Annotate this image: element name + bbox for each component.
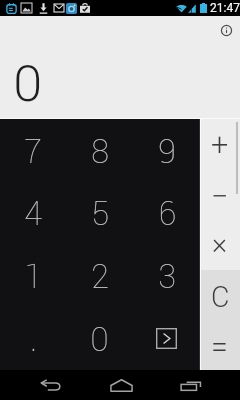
button[interactable]: 1 [0, 244, 66, 307]
staticText: C [211, 277, 230, 319]
staticText: 4 [24, 191, 42, 238]
staticText: 0 [90, 317, 109, 364]
staticText: 0 [13, 48, 43, 121]
staticText: 5 [91, 191, 109, 238]
button[interactable]: + [200, 119, 240, 170]
staticText: − [211, 176, 229, 220]
staticText: × [212, 226, 228, 268]
button[interactable]: 4 [0, 181, 66, 244]
staticText: + [211, 124, 229, 168]
button[interactable]: 7 [0, 119, 66, 181]
button[interactable]: × [200, 220, 240, 270]
button[interactable]: Advanced panel [133, 307, 200, 370]
button[interactable]: Menu [216, 20, 237, 41]
staticText: 8 [91, 129, 109, 176]
button[interactable]: Recents [170, 370, 212, 400]
staticText: 7 [24, 129, 42, 176]
button[interactable]: = [200, 320, 240, 370]
button[interactable]: 9 [133, 119, 200, 181]
staticText: 6 [158, 191, 176, 238]
button[interactable]: − [200, 170, 240, 220]
staticText: 1 [24, 254, 42, 301]
staticText: 3 [158, 254, 176, 301]
button[interactable]: C [200, 270, 240, 320]
staticText: = [211, 326, 229, 370]
button[interactable]: 6 [133, 181, 200, 244]
button[interactable]: . [0, 307, 66, 370]
staticText: . [30, 317, 37, 364]
button[interactable]: 5 [66, 181, 133, 244]
button[interactable]: Home [100, 370, 142, 400]
button[interactable]: 3 [133, 244, 200, 307]
staticText: 21:47 [210, 1, 240, 15]
button[interactable]: Back [29, 370, 71, 400]
button[interactable]: 2 [66, 244, 133, 307]
staticText: 9 [158, 129, 176, 176]
button[interactable]: 0 [66, 307, 133, 370]
staticText: 2 [91, 254, 109, 301]
button[interactable]: 8 [66, 119, 133, 181]
